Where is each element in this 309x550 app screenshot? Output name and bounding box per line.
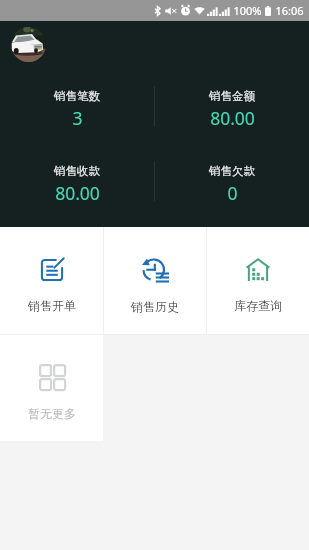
button[interactable]: 销售笔数 xyxy=(0,89,154,130)
button[interactable]: 销售收款 xyxy=(0,164,154,205)
staticText: 销售历史 xyxy=(131,299,179,314)
staticText: 销售收款 xyxy=(54,164,100,178)
staticText: 暂无更多 xyxy=(28,406,76,421)
staticText: 销售笔数 xyxy=(54,89,100,103)
other: Sales order xyxy=(40,258,64,282)
other: Inventory xyxy=(246,258,270,282)
staticText: 销售欠款 xyxy=(209,164,255,178)
other: Sales history xyxy=(142,258,169,283)
staticText: 销售开单 xyxy=(28,298,76,313)
staticText: 80.00 xyxy=(55,181,100,205)
staticText: 销售金额 xyxy=(209,89,255,103)
button[interactable]: User profile xyxy=(11,27,46,62)
button[interactable]: Inventory xyxy=(207,227,309,334)
button[interactable]: Sales history xyxy=(104,227,206,334)
staticText: 16:06 xyxy=(275,3,304,18)
button[interactable]: 暂无更多 xyxy=(0,335,103,441)
staticText: 3 xyxy=(72,106,83,130)
staticText: 80.00 xyxy=(210,106,255,130)
button[interactable]: Sales order xyxy=(0,227,103,334)
button[interactable]: 销售欠款 xyxy=(155,164,309,205)
staticText: 库存查询 xyxy=(234,298,282,313)
staticText: 100% xyxy=(233,3,262,18)
button[interactable]: 销售金额 xyxy=(155,89,309,130)
staticText: 0 xyxy=(227,181,238,205)
